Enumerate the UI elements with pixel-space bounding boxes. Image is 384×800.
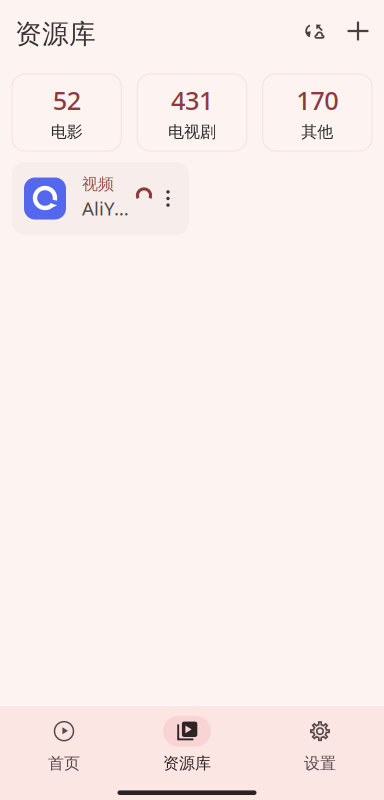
staticText: 首页 — [48, 754, 80, 773]
staticText: 170 — [296, 83, 338, 117]
staticText: 设置 — [304, 754, 336, 773]
staticText: 电视剧 — [168, 122, 216, 142]
button[interactable]: 资源库 — [128, 705, 256, 773]
staticText: 其他 — [301, 122, 333, 142]
staticText: 资源库 — [15, 18, 96, 50]
staticText: 52 — [53, 83, 81, 117]
button[interactable]: 视频 — [12, 162, 189, 235]
button[interactable]: 首页 — [0, 705, 128, 773]
staticText: AliYun — [82, 196, 136, 221]
button[interactable]: 设置 — [256, 705, 384, 773]
staticText: 视频 — [82, 174, 114, 194]
staticText: 电影 — [51, 122, 83, 142]
button[interactable]: 添加 — [338, 9, 378, 53]
staticText: 资源库 — [163, 754, 211, 773]
button[interactable]: 同步到云端 — [294, 9, 334, 53]
staticText: 431 — [171, 83, 213, 117]
